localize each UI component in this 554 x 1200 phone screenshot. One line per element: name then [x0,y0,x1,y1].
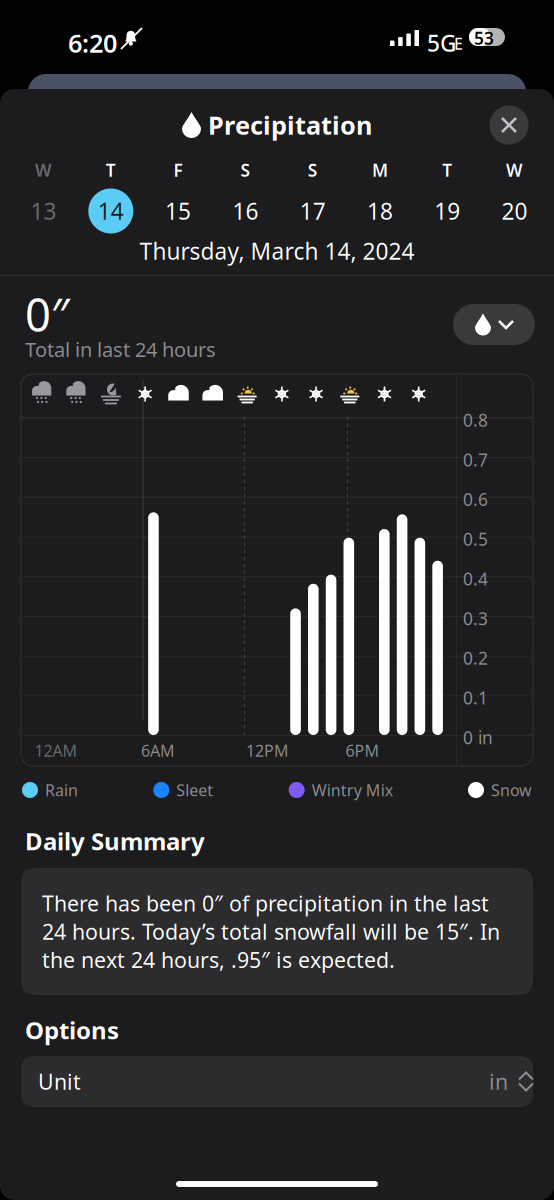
staticText: 0.3 [463,607,488,630]
staticText: 0.5 [463,527,488,550]
staticText: T [106,158,116,181]
staticText: 6AM [141,740,175,761]
staticText: 6:20 [68,26,117,60]
button[interactable]: 18 [346,187,413,235]
staticText: Sleet [176,779,213,801]
button[interactable]: 17 [279,187,346,235]
staticText: 0.7 [463,448,488,471]
button[interactable]: 20 [481,187,548,235]
staticText: Options [25,1014,119,1046]
staticText: 0.8 [463,408,488,431]
staticText: Thursday, March 14, 2024 [139,236,414,266]
button[interactable]: 13 [10,187,77,235]
staticText: 53 [474,26,494,49]
staticText: 17 [300,196,326,226]
staticText: Daily Summary [25,825,205,857]
staticText: 0.2 [463,647,488,670]
staticText: Wintry Mix [312,779,393,801]
staticText: W [35,158,52,181]
staticText: 0.4 [463,567,488,590]
staticText: 14 [98,196,124,226]
staticText: Precipitation [208,108,372,142]
staticText: T [442,158,452,181]
staticText: Unit [38,1067,81,1096]
staticText: 6PM [345,740,379,761]
button[interactable]: 19 [414,187,481,235]
staticText: Snow [491,779,532,801]
staticText: 16 [232,196,258,226]
button[interactable]: 16 [212,187,279,235]
staticText: 0″ [25,284,69,344]
staticText: 0.1 [463,686,488,709]
button[interactable]: 15 [145,187,212,235]
staticText: 19 [434,196,460,226]
button[interactable]: Precipitation type [453,304,535,345]
staticText: S [240,158,250,181]
staticText: S [308,158,318,181]
button[interactable]: Close [487,103,531,147]
staticText: E [454,33,463,54]
staticText: 12AM [35,740,78,761]
staticText: 20 [502,196,528,226]
staticText: 13 [30,196,56,226]
staticText: M [372,158,388,181]
staticText: in [489,1067,508,1096]
staticText: Total in last 24 hours [25,336,216,363]
staticText: 0 in [463,726,493,749]
staticText: Rain [45,779,78,801]
staticText: 5G [427,28,456,58]
staticText: 15 [165,196,191,226]
staticText: There has been 0″ of precipitation in th… [42,889,500,974]
staticText: 18 [367,196,393,226]
staticText: 0.6 [463,488,488,511]
staticText: F [174,158,183,181]
button[interactable]: Unit [21,1056,533,1107]
staticText: 12PM [246,740,289,761]
staticText: W [506,158,523,181]
button[interactable]: 14 [77,187,144,235]
